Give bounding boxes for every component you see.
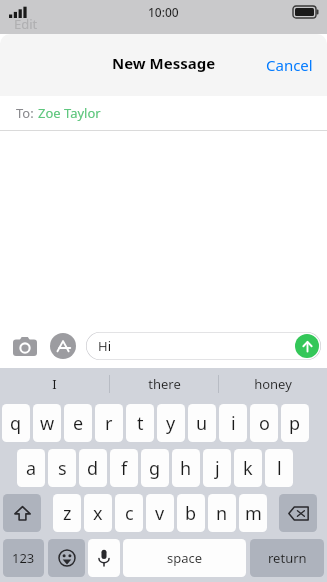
staticText: h bbox=[180, 456, 192, 481]
staticText: x bbox=[93, 501, 103, 526]
button[interactable]: To: bbox=[0, 96, 327, 130]
button[interactable]: l bbox=[265, 449, 293, 487]
button[interactable]: z bbox=[53, 494, 81, 532]
button[interactable]: Hi bbox=[86, 332, 321, 360]
staticText: s bbox=[58, 456, 67, 481]
staticText: g bbox=[149, 456, 161, 481]
button[interactable]: g bbox=[141, 449, 169, 487]
button[interactable]: Cancel bbox=[258, 49, 321, 81]
staticText: u bbox=[196, 411, 208, 436]
button[interactable]: k bbox=[234, 449, 262, 487]
button[interactable]: q bbox=[2, 404, 30, 442]
button[interactable]: f bbox=[110, 449, 138, 487]
staticText: I bbox=[52, 375, 57, 393]
staticText: m bbox=[245, 501, 262, 526]
button[interactable]: 123 bbox=[3, 539, 44, 577]
staticText: Zoe Taylor bbox=[38, 104, 101, 122]
staticText: return bbox=[268, 549, 307, 567]
button[interactable]: there bbox=[110, 368, 218, 400]
button[interactable]: Shift bbox=[3, 494, 41, 532]
staticText: l bbox=[277, 456, 282, 481]
button[interactable]: p bbox=[281, 404, 309, 442]
button[interactable]: v bbox=[146, 494, 174, 532]
button[interactable]: b bbox=[177, 494, 205, 532]
staticText: honey bbox=[254, 375, 292, 393]
staticText: t bbox=[137, 411, 144, 436]
button[interactable]: Send bbox=[295, 334, 319, 358]
staticText: d bbox=[87, 456, 99, 481]
button[interactable]: d bbox=[79, 449, 107, 487]
staticText: q bbox=[10, 411, 22, 436]
button[interactable]: s bbox=[48, 449, 76, 487]
staticText: c bbox=[125, 501, 134, 526]
button[interactable]: o bbox=[250, 404, 278, 442]
staticText: Edit bbox=[14, 15, 38, 33]
staticText: o bbox=[259, 411, 270, 436]
button[interactable]: w bbox=[33, 404, 61, 442]
button[interactable]: honey bbox=[219, 368, 327, 400]
button[interactable]: r bbox=[95, 404, 123, 442]
staticText: i bbox=[231, 411, 236, 436]
button[interactable]: t bbox=[126, 404, 154, 442]
button[interactable]: n bbox=[208, 494, 236, 532]
staticText: p bbox=[289, 411, 301, 436]
button[interactable]: I bbox=[0, 368, 109, 400]
staticText: New Message bbox=[112, 53, 216, 73]
staticText: z bbox=[63, 501, 72, 526]
staticText: 10:00 bbox=[148, 4, 179, 20]
button[interactable]: u bbox=[188, 404, 216, 442]
button[interactable]: Emoji bbox=[48, 539, 85, 577]
button[interactable]: Camera bbox=[10, 331, 40, 361]
staticText: r bbox=[105, 411, 113, 436]
button[interactable]: Dictation bbox=[88, 539, 120, 577]
staticText: e bbox=[73, 411, 84, 436]
staticText: v bbox=[155, 501, 165, 526]
staticText: a bbox=[26, 456, 37, 481]
button[interactable]: c bbox=[115, 494, 143, 532]
staticText: Hi bbox=[98, 337, 111, 355]
button[interactable]: App Store bbox=[50, 333, 76, 359]
staticText: To: bbox=[16, 104, 38, 122]
button[interactable]: y bbox=[157, 404, 185, 442]
staticText: n bbox=[216, 501, 228, 526]
button[interactable]: space bbox=[123, 539, 246, 577]
staticText: Cancel bbox=[266, 55, 313, 75]
staticText: j bbox=[215, 456, 220, 481]
staticText: 123 bbox=[12, 549, 35, 567]
button[interactable]: h bbox=[172, 449, 200, 487]
button[interactable]: e bbox=[64, 404, 92, 442]
button[interactable]: i bbox=[219, 404, 247, 442]
button[interactable]: x bbox=[84, 494, 112, 532]
staticText: space bbox=[167, 549, 203, 567]
button[interactable]: a bbox=[17, 449, 45, 487]
button[interactable]: return bbox=[250, 539, 324, 577]
staticText: there bbox=[148, 375, 181, 393]
staticText: w bbox=[40, 411, 55, 436]
staticText: f bbox=[121, 456, 128, 481]
staticText: b bbox=[185, 501, 197, 526]
button[interactable]: m bbox=[239, 494, 267, 532]
staticText: y bbox=[166, 411, 176, 436]
button[interactable]: j bbox=[203, 449, 231, 487]
button[interactable]: Backspace bbox=[279, 494, 317, 532]
staticText: k bbox=[243, 456, 253, 481]
